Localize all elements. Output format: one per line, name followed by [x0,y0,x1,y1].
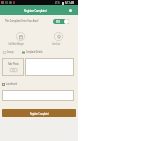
button[interactable]: Take Photo [2,58,24,76]
staticText: Take Photo [8,62,19,66]
staticText: 41% [55,1,60,5]
staticText: Image [7,50,14,54]
button[interactable]: Complaint description [25,58,74,76]
staticText: Landmark [6,82,17,86]
staticText: Green Cover [52,42,61,46]
staticText: Complaint Details [26,50,43,54]
button[interactable]: Yes toggle [53,19,69,24]
staticText: YES [56,20,61,24]
staticText: This Complaint From Your Area? [5,19,39,23]
button[interactable]: More options [69,9,72,12]
button[interactable]: Solid Waste Management [6,32,34,46]
staticText: Solid Waste Management [8,42,24,46]
button[interactable]: Complaint Details [22,50,53,54]
staticText: Register Complaint [24,8,47,13]
button[interactable]: Image [3,50,17,54]
staticText: Register Complaint [30,111,49,116]
button[interactable]: Green Cover [44,32,72,46]
button[interactable]: Landmark input [2,90,74,101]
button[interactable]: Register Complaint [2,109,76,117]
staticText: 8:17 AM [65,1,75,5]
button[interactable]: Landmark [2,82,22,86]
